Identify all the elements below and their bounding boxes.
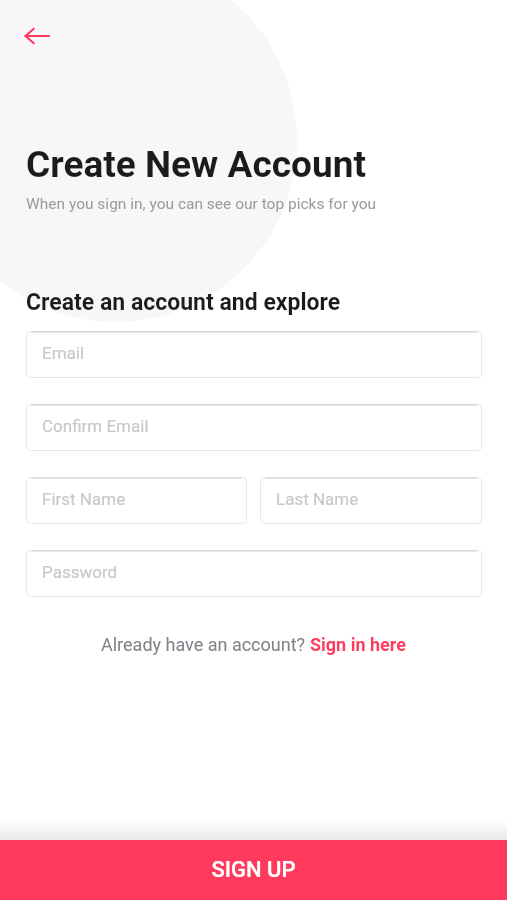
staticText: Already have an account? [101, 634, 310, 655]
staticText: Confirm Email [42, 416, 149, 436]
staticText: When you sign in, you can see our top pi… [26, 195, 377, 213]
button[interactable]: Sign in here [310, 634, 406, 655]
staticText: Password [42, 562, 118, 582]
staticText: First Name [42, 489, 126, 509]
staticText: Email [42, 343, 85, 363]
button[interactable]: First Name [26, 477, 247, 524]
button[interactable]: Password [26, 550, 482, 597]
button[interactable]: Email [26, 331, 482, 378]
staticText: Create New Account [26, 143, 366, 186]
staticText: SIGN UP [211, 857, 296, 883]
staticText: Last Name [276, 489, 359, 509]
button[interactable]: Confirm Email [26, 404, 482, 451]
staticText: Create an account and explore [26, 289, 341, 316]
button[interactable]: SIGN UP [0, 840, 507, 900]
button[interactable]: Back [19, 18, 55, 54]
staticText: Sign in here [310, 634, 406, 655]
button[interactable]: Last Name [260, 477, 482, 524]
